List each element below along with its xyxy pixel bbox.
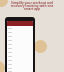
- button[interactable]: [7, 70, 33, 72]
- button[interactable]: [7, 38, 33, 42]
- button[interactable]: [7, 34, 33, 38]
- button[interactable]: [7, 66, 33, 70]
- button[interactable]: [7, 54, 33, 58]
- button[interactable]: [7, 50, 33, 54]
- button[interactable]: [7, 30, 33, 34]
- button[interactable]: [7, 26, 33, 30]
- button[interactable]: [7, 42, 33, 46]
- staticText: Simplify your workout and recovery track…: [9, 1, 55, 11]
- button[interactable]: [7, 58, 33, 62]
- button[interactable]: [7, 46, 33, 50]
- button[interactable]: [7, 62, 33, 66]
